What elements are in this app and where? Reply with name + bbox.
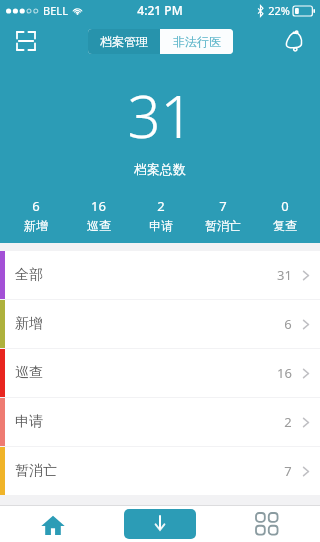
staticText: 非法行医 [173, 34, 221, 49]
staticText: 档案总数 [134, 161, 186, 177]
button[interactable]: 非法行医 [160, 29, 233, 54]
staticText: 申请 [15, 413, 43, 431]
button[interactable]: Scan [8, 23, 44, 59]
staticText: 暂消亡 [205, 218, 241, 233]
staticText: 新增 [15, 315, 43, 333]
staticText: 巡查 [87, 218, 111, 233]
button[interactable]: 申请 [0, 398, 320, 446]
button[interactable]: 全部 [0, 251, 320, 299]
button[interactable]: 7 [192, 197, 254, 233]
staticText: 暂消亡 [15, 462, 57, 480]
staticText: 复查 [273, 218, 297, 233]
staticText: 31 [277, 266, 292, 284]
staticText: 4:21 PM [137, 2, 183, 18]
staticText: 6 [284, 315, 292, 333]
button[interactable]: 新增 [0, 300, 320, 348]
staticText: 7 [284, 462, 292, 480]
staticText: 16 [91, 197, 106, 215]
staticText: 2 [284, 413, 292, 431]
button[interactable]: 2 [130, 197, 192, 233]
button[interactable]: More [213, 505, 320, 542]
staticText: 7 [219, 197, 227, 215]
staticText: 16 [277, 364, 292, 382]
staticText: BELL [43, 3, 68, 18]
staticText: 新增 [24, 218, 48, 233]
button[interactable]: 暂消亡 [0, 447, 320, 495]
staticText: 巡查 [15, 364, 43, 382]
button[interactable]: 档案管理 [88, 29, 160, 54]
button[interactable]: Add [124, 509, 196, 539]
staticText: 22% [268, 3, 290, 18]
staticText: 0 [281, 197, 289, 215]
button[interactable]: 0 [254, 197, 316, 233]
staticText: 31 [127, 76, 194, 155]
button[interactable]: 巡查 [0, 349, 320, 397]
staticText: 申请 [149, 218, 173, 233]
staticText: 6 [32, 197, 40, 215]
staticText: 2 [157, 197, 165, 215]
button[interactable]: 16 [67, 197, 130, 233]
button[interactable]: Notifications [276, 23, 312, 59]
staticText: 档案管理 [100, 34, 148, 49]
button[interactable]: 6 [4, 197, 67, 233]
button[interactable]: Home [0, 505, 106, 542]
staticText: 全部 [15, 266, 43, 284]
